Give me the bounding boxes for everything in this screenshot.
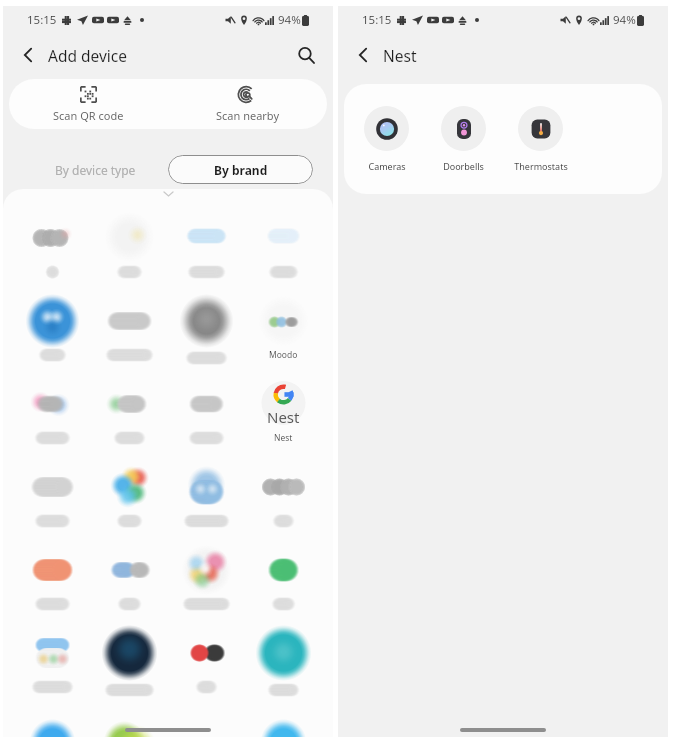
button[interactable] — [168, 373, 245, 456]
button[interactable]: Search — [289, 38, 323, 72]
button[interactable]: Thermostats — [502, 106, 579, 172]
button[interactable] — [91, 290, 168, 373]
staticText: Scan nearby — [216, 108, 280, 123]
button[interactable] — [14, 373, 91, 456]
button[interactable] — [168, 539, 245, 622]
staticText: By brand — [214, 162, 268, 178]
staticText: Cameras — [368, 160, 406, 172]
button[interactable]: By brand — [168, 155, 313, 184]
button[interactable]: Moodo — [245, 290, 322, 373]
button[interactable] — [168, 207, 245, 290]
staticText: Doorbells — [443, 160, 484, 172]
staticText: Thermostats — [514, 160, 568, 172]
staticText: Nest — [274, 432, 293, 444]
staticText: Nest — [267, 407, 300, 427]
button[interactable] — [91, 539, 168, 622]
button[interactable] — [168, 456, 245, 539]
button[interactable] — [91, 373, 168, 456]
button[interactable] — [14, 705, 91, 737]
staticText: 15:15 — [27, 12, 57, 28]
button[interactable]: By device type — [23, 155, 168, 184]
staticText: Nest — [383, 45, 417, 66]
staticText: By device type — [55, 162, 136, 178]
staticText: Moodo — [269, 349, 298, 361]
button[interactable]: Scan nearby — [168, 79, 327, 129]
button[interactable] — [14, 539, 91, 622]
button[interactable] — [245, 456, 322, 539]
staticText: Scan QR code — [53, 108, 124, 123]
button[interactable]: Doorbells — [425, 106, 502, 172]
button[interactable] — [245, 622, 322, 705]
button[interactable] — [245, 207, 322, 290]
staticText: 15:15 — [362, 12, 392, 28]
button[interactable]: Cameras — [348, 106, 425, 172]
staticText: 94% — [278, 12, 301, 28]
button[interactable]: Back — [11, 38, 45, 72]
button[interactable]: Scan QR code — [9, 79, 167, 129]
button[interactable] — [91, 622, 168, 705]
button[interactable] — [91, 456, 168, 539]
button[interactable] — [14, 207, 91, 290]
staticText: Add device — [48, 45, 128, 66]
staticText: 94% — [613, 12, 636, 28]
button[interactable] — [245, 539, 322, 622]
button[interactable] — [14, 290, 91, 373]
button[interactable]: Back — [346, 38, 380, 72]
button[interactable] — [245, 705, 322, 737]
button[interactable] — [14, 456, 91, 539]
button[interactable] — [168, 290, 245, 373]
button[interactable] — [91, 705, 168, 737]
button[interactable] — [168, 705, 245, 737]
button[interactable]: Nest — [245, 373, 322, 456]
button[interactable] — [168, 622, 245, 705]
button[interactable] — [14, 622, 91, 705]
button[interactable] — [91, 207, 168, 290]
